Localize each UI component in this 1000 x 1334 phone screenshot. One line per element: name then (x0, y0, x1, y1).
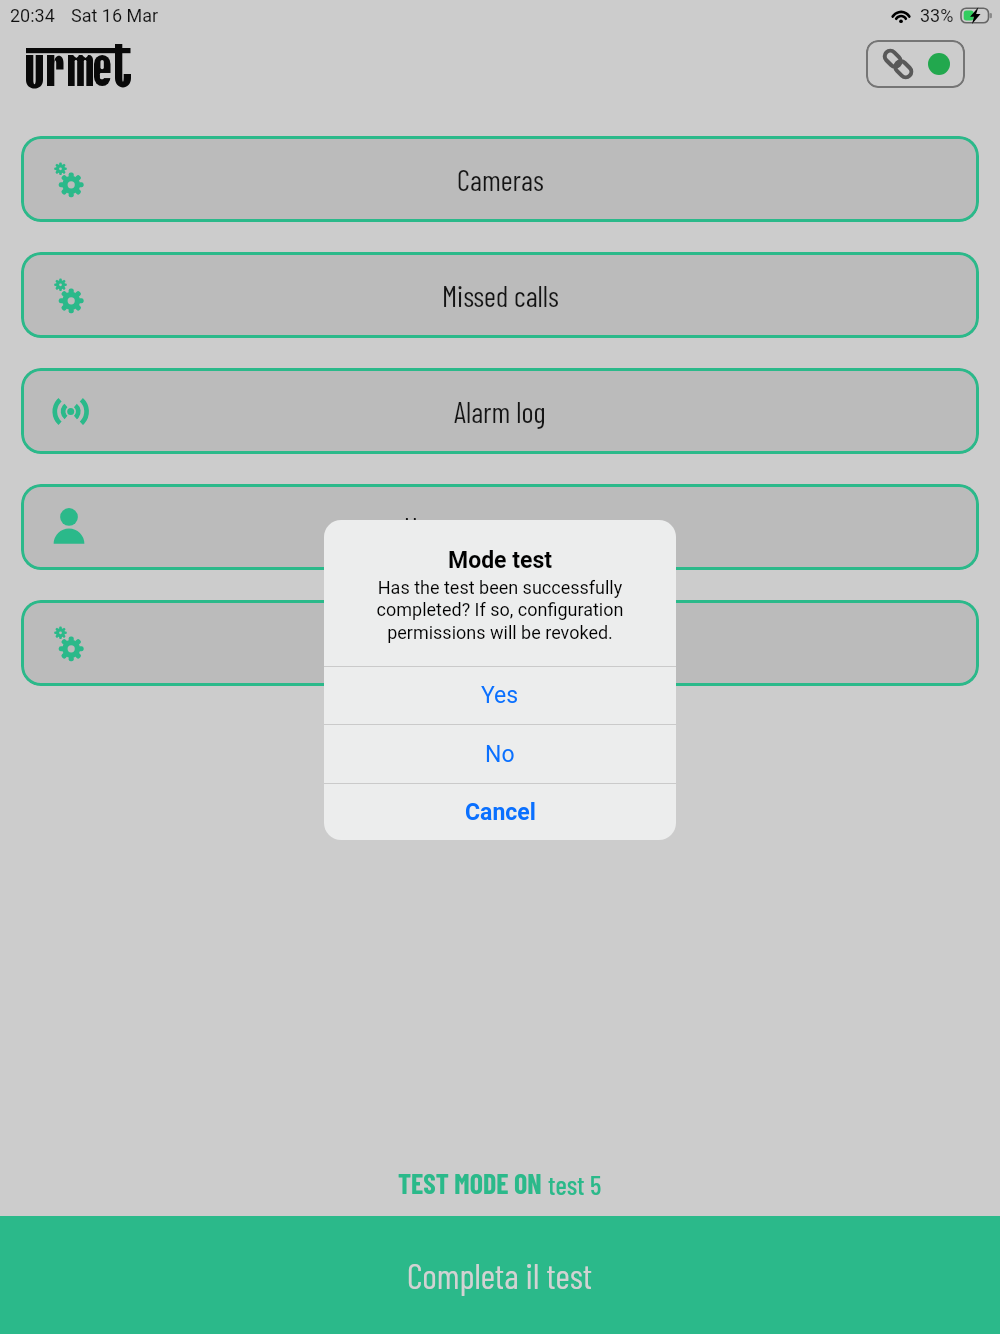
staticText: Users management (404, 510, 596, 545)
staticText: Cancel (465, 799, 536, 826)
staticText: 33% (920, 5, 954, 26)
staticText: Has the test been successfully completed… (335, 577, 665, 644)
staticText: Missed calls (442, 278, 559, 313)
button[interactable]: Cancel (324, 784, 676, 840)
staticText: Settings (460, 626, 541, 661)
staticText: Yes (481, 682, 519, 709)
button[interactable]: Missed calls (21, 252, 979, 338)
staticText: test 5 (548, 1168, 602, 1200)
staticText: TEST MODE ON (398, 1166, 548, 1200)
staticText: Completa il test (407, 1254, 593, 1296)
button[interactable]: Cameras (21, 136, 979, 222)
button[interactable]: Settings (21, 600, 979, 686)
button[interactable]: Connection status (866, 40, 965, 88)
staticText: Alarm log (454, 394, 546, 429)
button[interactable]: No (324, 725, 676, 783)
button[interactable]: Alarm log (21, 368, 979, 454)
staticText: Mode test (448, 547, 553, 574)
staticText: Sat 16 Mar (71, 5, 159, 26)
staticText: 20:34 (10, 5, 55, 26)
button[interactable]: Yes (324, 667, 676, 724)
staticText: Cameras (457, 162, 544, 197)
button[interactable]: Users management (21, 484, 979, 570)
staticText: No (485, 741, 515, 768)
button[interactable]: Completa il test (0, 1216, 1000, 1334)
